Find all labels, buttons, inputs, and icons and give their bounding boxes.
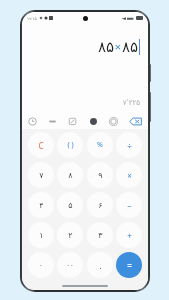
staticText: × — [127, 170, 132, 181]
staticText: ۷٬۲۲۵ — [122, 99, 140, 107]
staticText: ۶ — [98, 201, 103, 210]
staticText: ۳ — [98, 231, 103, 240]
button[interactable]: × — [116, 162, 142, 188]
staticText: ۵ — [68, 201, 73, 210]
button[interactable]: ۴ — [28, 192, 54, 218]
button[interactable]: Unit converter — [68, 117, 77, 126]
staticText: + — [127, 230, 132, 241]
staticText: ۷ — [39, 171, 44, 180]
staticText: ۱ — [39, 231, 44, 240]
button[interactable]: ( ) — [57, 132, 83, 158]
staticText: × — [114, 39, 121, 54]
staticText: − — [127, 200, 132, 211]
button[interactable]: ۲ — [57, 222, 83, 248]
staticText: ۸۵ — [97, 38, 114, 55]
staticText: . — [99, 260, 102, 271]
button[interactable]: . — [87, 252, 113, 278]
button[interactable]: ۷ — [28, 162, 54, 188]
button[interactable]: ۶ — [87, 192, 113, 218]
button[interactable]: = — [116, 252, 142, 278]
staticText: ۲ — [68, 231, 73, 240]
button[interactable]: Backspace — [129, 117, 142, 126]
button[interactable]: ÷ — [116, 132, 142, 158]
button[interactable]: Settings — [109, 117, 118, 126]
staticText: ۰۰ — [66, 261, 74, 269]
button[interactable]: − — [116, 192, 142, 218]
button[interactable]: Memory — [48, 117, 57, 126]
button[interactable]: History — [28, 117, 37, 126]
staticText: ۰ — [39, 261, 43, 269]
staticText: ۸۵ — [121, 38, 138, 55]
button[interactable]: Theme — [89, 117, 98, 126]
button[interactable]: ۰۰ — [57, 252, 83, 278]
button[interactable]: + — [116, 222, 142, 248]
button[interactable]: ۳ — [87, 222, 113, 248]
staticText: = — [127, 260, 132, 271]
button[interactable]: ۱ — [28, 222, 54, 248]
button[interactable]: ۸ — [57, 162, 83, 188]
button[interactable]: ۵ — [57, 192, 83, 218]
staticText: % — [97, 140, 103, 150]
staticText: C — [38, 140, 44, 151]
staticText: ۱۲:۱۵ — [27, 16, 37, 21]
button[interactable]: ۰ — [28, 252, 54, 278]
button[interactable]: ۹ — [87, 162, 113, 188]
staticText: ÷ — [127, 140, 132, 151]
staticText: ۴ — [39, 201, 44, 210]
staticText: ۹ — [98, 171, 103, 180]
button[interactable]: C — [28, 132, 54, 158]
staticText: ( ) — [67, 140, 74, 150]
button[interactable]: % — [87, 132, 113, 158]
staticText: ۸ — [68, 171, 73, 180]
